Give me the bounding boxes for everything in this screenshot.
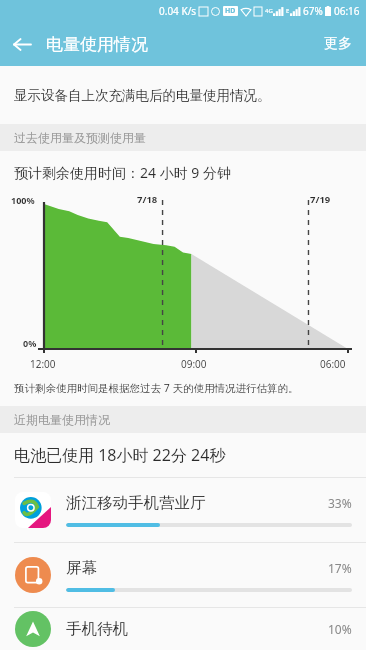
staticText: E	[286, 7, 290, 15]
staticText: 屏幕	[66, 558, 328, 578]
staticText: 电量使用情况	[46, 34, 148, 55]
staticText: 0.04 K/s	[159, 4, 197, 18]
staticText: 7/18	[137, 193, 158, 206]
staticText: 4G	[265, 7, 273, 15]
staticText: 近期电量使用情况	[14, 412, 110, 427]
button[interactable]: 返回	[0, 22, 44, 66]
staticText: HD	[225, 6, 236, 16]
staticText: 100%	[11, 194, 35, 206]
staticText: 10%	[328, 621, 352, 637]
staticText: 过去使用量及预测使用量	[14, 130, 146, 145]
staticText: 电池已使用 18小时 22分 24秒	[14, 444, 226, 466]
staticText: 06:00	[320, 357, 346, 371]
button[interactable]: 手机待机	[0, 608, 366, 650]
staticText: 手机待机	[66, 619, 328, 639]
staticText: 06:16	[334, 4, 360, 18]
staticText: 更多	[324, 35, 352, 53]
staticText: 12:00	[30, 357, 56, 371]
staticText: 浙江移动手机营业厅	[66, 493, 328, 513]
staticText: 7/19	[310, 193, 331, 206]
staticText: 67%	[303, 4, 323, 18]
staticText: 预计剩余使用时间：24 小时 9 分钟	[14, 163, 231, 182]
staticText: 0%	[23, 337, 37, 349]
staticText: 显示设备自上次充满电后的电量使用情况。	[14, 87, 271, 104]
button[interactable]: 浙江移动手机营业厅	[0, 478, 366, 542]
staticText: 33%	[328, 495, 352, 511]
staticText: 预计剩余使用时间是根据您过去 7 天的使用情况进行估算的。	[14, 381, 299, 395]
staticText: 17%	[328, 560, 352, 576]
button[interactable]: 屏幕	[0, 543, 366, 607]
button[interactable]: 更多	[310, 22, 366, 66]
staticText: 09:00	[181, 357, 207, 371]
